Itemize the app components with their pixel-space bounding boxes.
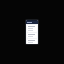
button[interactable] — [27, 39, 37, 44]
button[interactable] — [27, 25, 37, 32]
button[interactable] — [27, 33, 37, 38]
button[interactable]: App bar — [26, 21, 38, 24]
